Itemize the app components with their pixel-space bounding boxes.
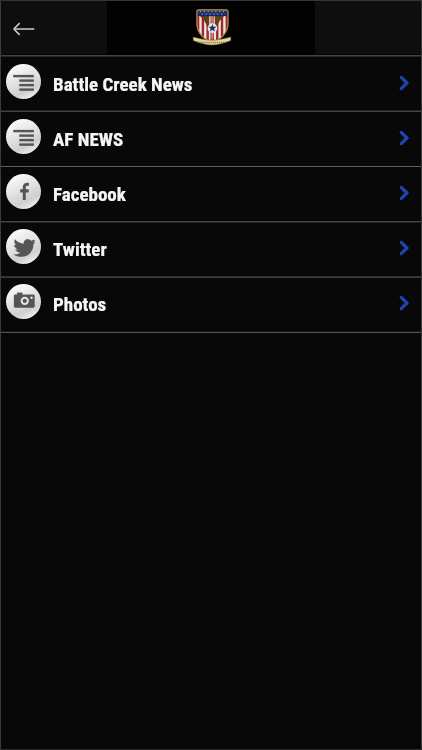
staticText: Facebook	[53, 183, 126, 205]
button[interactable]: Battle Creek News	[0, 55, 422, 110]
button[interactable]: Photos	[0, 275, 422, 330]
staticText: Battle Creek News	[53, 73, 193, 95]
staticText: Twitter	[53, 238, 107, 260]
button[interactable]: Facebook	[0, 165, 422, 220]
button[interactable]: Twitter	[0, 220, 422, 275]
staticText: AF NEWS	[53, 128, 124, 150]
staticText: Photos	[53, 293, 107, 315]
button[interactable]: AF NEWS	[0, 110, 422, 165]
button[interactable]: Back	[0, 0, 52, 55]
